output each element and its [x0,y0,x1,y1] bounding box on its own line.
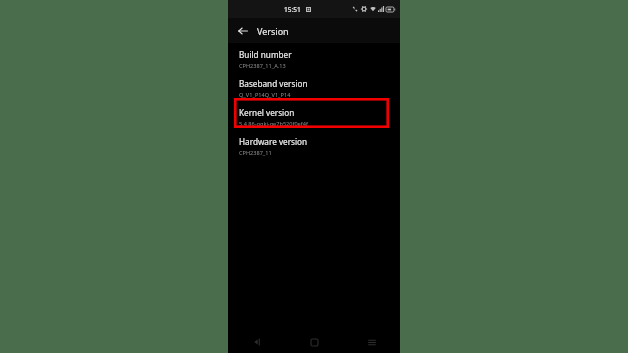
staticText: Baseband version [239,78,308,89]
staticText: CPH2387_11 [239,149,272,157]
staticText: Version [257,25,289,37]
button[interactable]: Back [235,23,251,39]
button[interactable]: Home [286,331,343,353]
staticText: Hardware version [239,136,308,147]
button[interactable]: Baseband version [228,70,400,99]
staticText: 5.4 86-qgki-ge7b520f0ef4f [239,120,308,128]
staticText: Build number [239,49,292,60]
staticText: Q_V1_P14Q_V1_P14 [239,91,291,99]
button[interactable]: Recent apps [343,331,400,353]
button[interactable]: Build number [228,43,400,70]
staticText: CPH2387_11_A.13 [239,62,286,70]
button[interactable]: Back [228,331,286,353]
button[interactable]: Hardware version [228,128,400,157]
staticText: 15:51 [284,5,301,14]
staticText: Kernel version [239,107,295,118]
button[interactable]: Kernel version [228,99,400,128]
